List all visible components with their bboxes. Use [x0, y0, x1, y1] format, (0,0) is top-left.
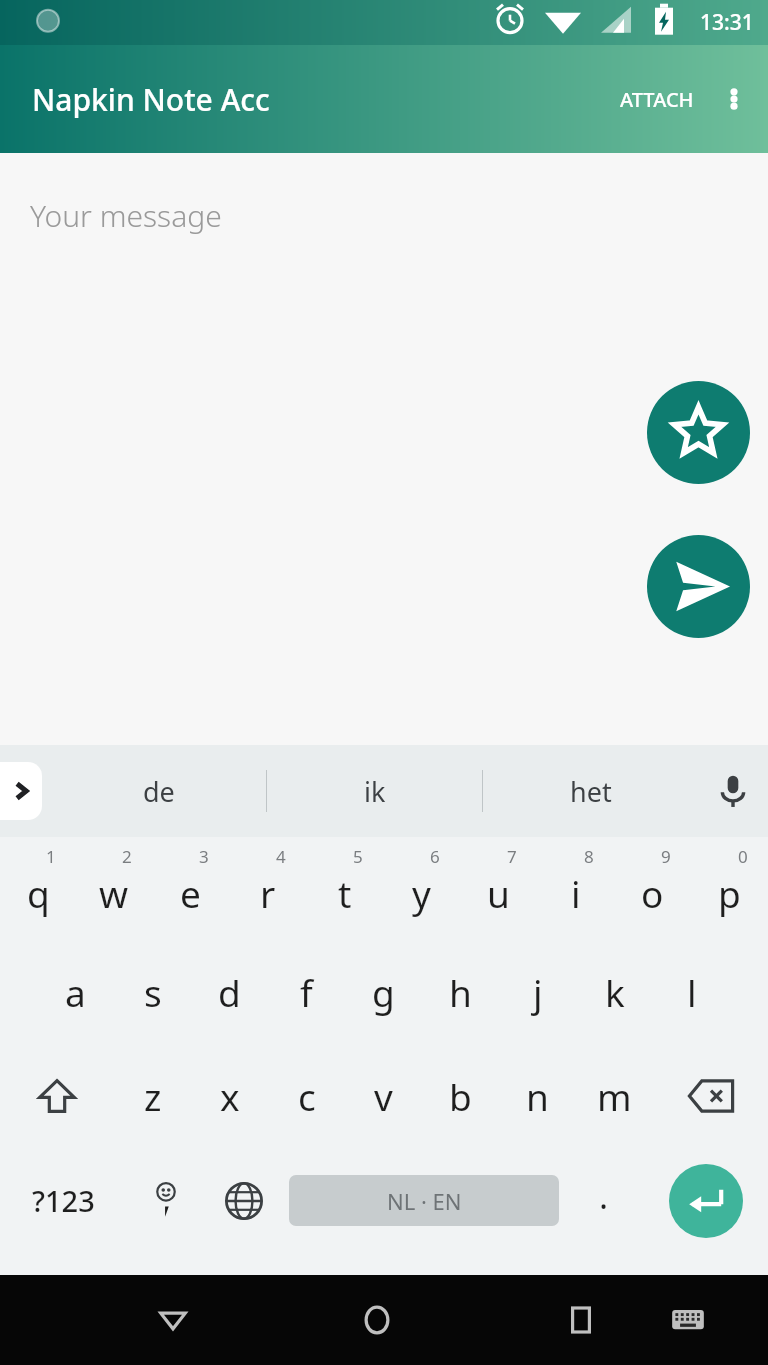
button[interactable]: 6	[383, 837, 460, 940]
staticText: 4	[276, 845, 286, 868]
staticText: Your message	[30, 195, 222, 236]
staticText: a	[65, 967, 86, 1017]
staticText: f	[300, 967, 313, 1017]
staticText: Napkin Note Acc	[32, 79, 270, 120]
staticText: 0	[738, 845, 748, 868]
staticText: m	[597, 1071, 632, 1121]
staticText: z	[144, 1071, 162, 1121]
button[interactable]: 5	[306, 837, 383, 940]
button[interactable]: Backspace	[653, 1044, 768, 1148]
staticText: y	[412, 868, 431, 918]
button[interactable]: 9	[614, 837, 691, 940]
staticText: 9	[661, 845, 671, 868]
button[interactable]: het	[483, 745, 698, 837]
staticText: 2	[122, 845, 132, 868]
staticText: 1	[46, 845, 56, 868]
button[interactable]: 7	[460, 837, 537, 940]
staticText: u	[487, 868, 510, 918]
staticText: het	[570, 773, 612, 810]
button[interactable]: n	[499, 1044, 576, 1148]
button[interactable]: Voice input	[698, 756, 768, 826]
staticText: NL · EN	[387, 1186, 462, 1216]
button[interactable]: b	[422, 1044, 499, 1148]
staticText: 3	[199, 845, 209, 868]
button[interactable]: g	[345, 940, 422, 1044]
staticText: t	[338, 868, 352, 918]
button[interactable]: d	[191, 940, 268, 1044]
button[interactable]: ?123	[0, 1148, 126, 1253]
staticText: 13:31	[700, 8, 754, 37]
staticText: 5	[353, 845, 363, 868]
button[interactable]: 3	[152, 837, 229, 940]
button[interactable]: 8	[537, 837, 614, 940]
button[interactable]: 4	[229, 837, 306, 940]
button[interactable]: Send	[647, 535, 750, 638]
staticText: b	[449, 1071, 472, 1121]
button[interactable]: Shift	[0, 1044, 114, 1148]
button[interactable]: j	[499, 940, 576, 1044]
staticText: r	[260, 868, 276, 918]
staticText: o	[641, 868, 664, 918]
staticText: k	[605, 967, 625, 1017]
button[interactable]: de	[52, 745, 266, 837]
button[interactable]: v	[345, 1044, 422, 1148]
button[interactable]: 1	[0, 837, 76, 940]
staticText: 6	[430, 845, 440, 868]
button[interactable]: Favorite	[647, 381, 750, 484]
button[interactable]: 2	[76, 837, 152, 940]
button[interactable]: f	[268, 940, 345, 1044]
staticText: d	[218, 967, 241, 1017]
button[interactable]: Switch keyboard	[634, 1275, 741, 1365]
button[interactable]: .	[565, 1148, 643, 1253]
staticText: de	[143, 773, 175, 810]
button[interactable]: m	[576, 1044, 653, 1148]
button[interactable]: ik	[267, 745, 482, 837]
staticText: s	[144, 967, 162, 1017]
staticText: j	[533, 967, 543, 1017]
button[interactable]: ATTACH	[608, 72, 706, 127]
button[interactable]: Recents	[527, 1275, 634, 1365]
button[interactable]: Home	[323, 1275, 430, 1365]
button[interactable]: Change language	[205, 1148, 283, 1253]
staticText: 8	[584, 845, 594, 868]
button[interactable]: l	[653, 940, 730, 1044]
staticText: ATTACH	[620, 86, 694, 113]
staticText: .	[599, 1173, 609, 1219]
staticText: c	[298, 1071, 316, 1121]
staticText: 7	[507, 845, 517, 868]
button[interactable]: Emoji and comma	[126, 1148, 205, 1253]
staticText: x	[220, 1071, 240, 1121]
button[interactable]: Back	[119, 1275, 226, 1365]
button[interactable]: h	[422, 940, 499, 1044]
staticText: n	[526, 1071, 549, 1121]
staticText: q	[27, 868, 50, 918]
button[interactable]: z	[114, 1044, 191, 1148]
staticText: ik	[364, 773, 386, 810]
button[interactable]: NL · EN	[289, 1175, 559, 1226]
staticText: w	[99, 868, 129, 918]
staticText: p	[718, 868, 741, 918]
staticText: i	[571, 868, 581, 918]
button[interactable]: More options	[706, 71, 762, 127]
button[interactable]: 0	[691, 837, 768, 940]
button[interactable]: Expand	[0, 762, 42, 820]
staticText: g	[372, 967, 395, 1017]
button[interactable]: k	[576, 940, 653, 1044]
button[interactable]: a	[37, 940, 114, 1044]
button[interactable]: x	[191, 1044, 268, 1148]
staticText: h	[449, 967, 472, 1017]
staticText: v	[374, 1071, 393, 1121]
button[interactable]: c	[268, 1044, 345, 1148]
staticText: l	[687, 967, 697, 1017]
staticText: ?123	[32, 1181, 95, 1220]
staticText: e	[180, 868, 201, 918]
button[interactable]: Enter	[669, 1164, 743, 1238]
button[interactable]: s	[114, 940, 191, 1044]
